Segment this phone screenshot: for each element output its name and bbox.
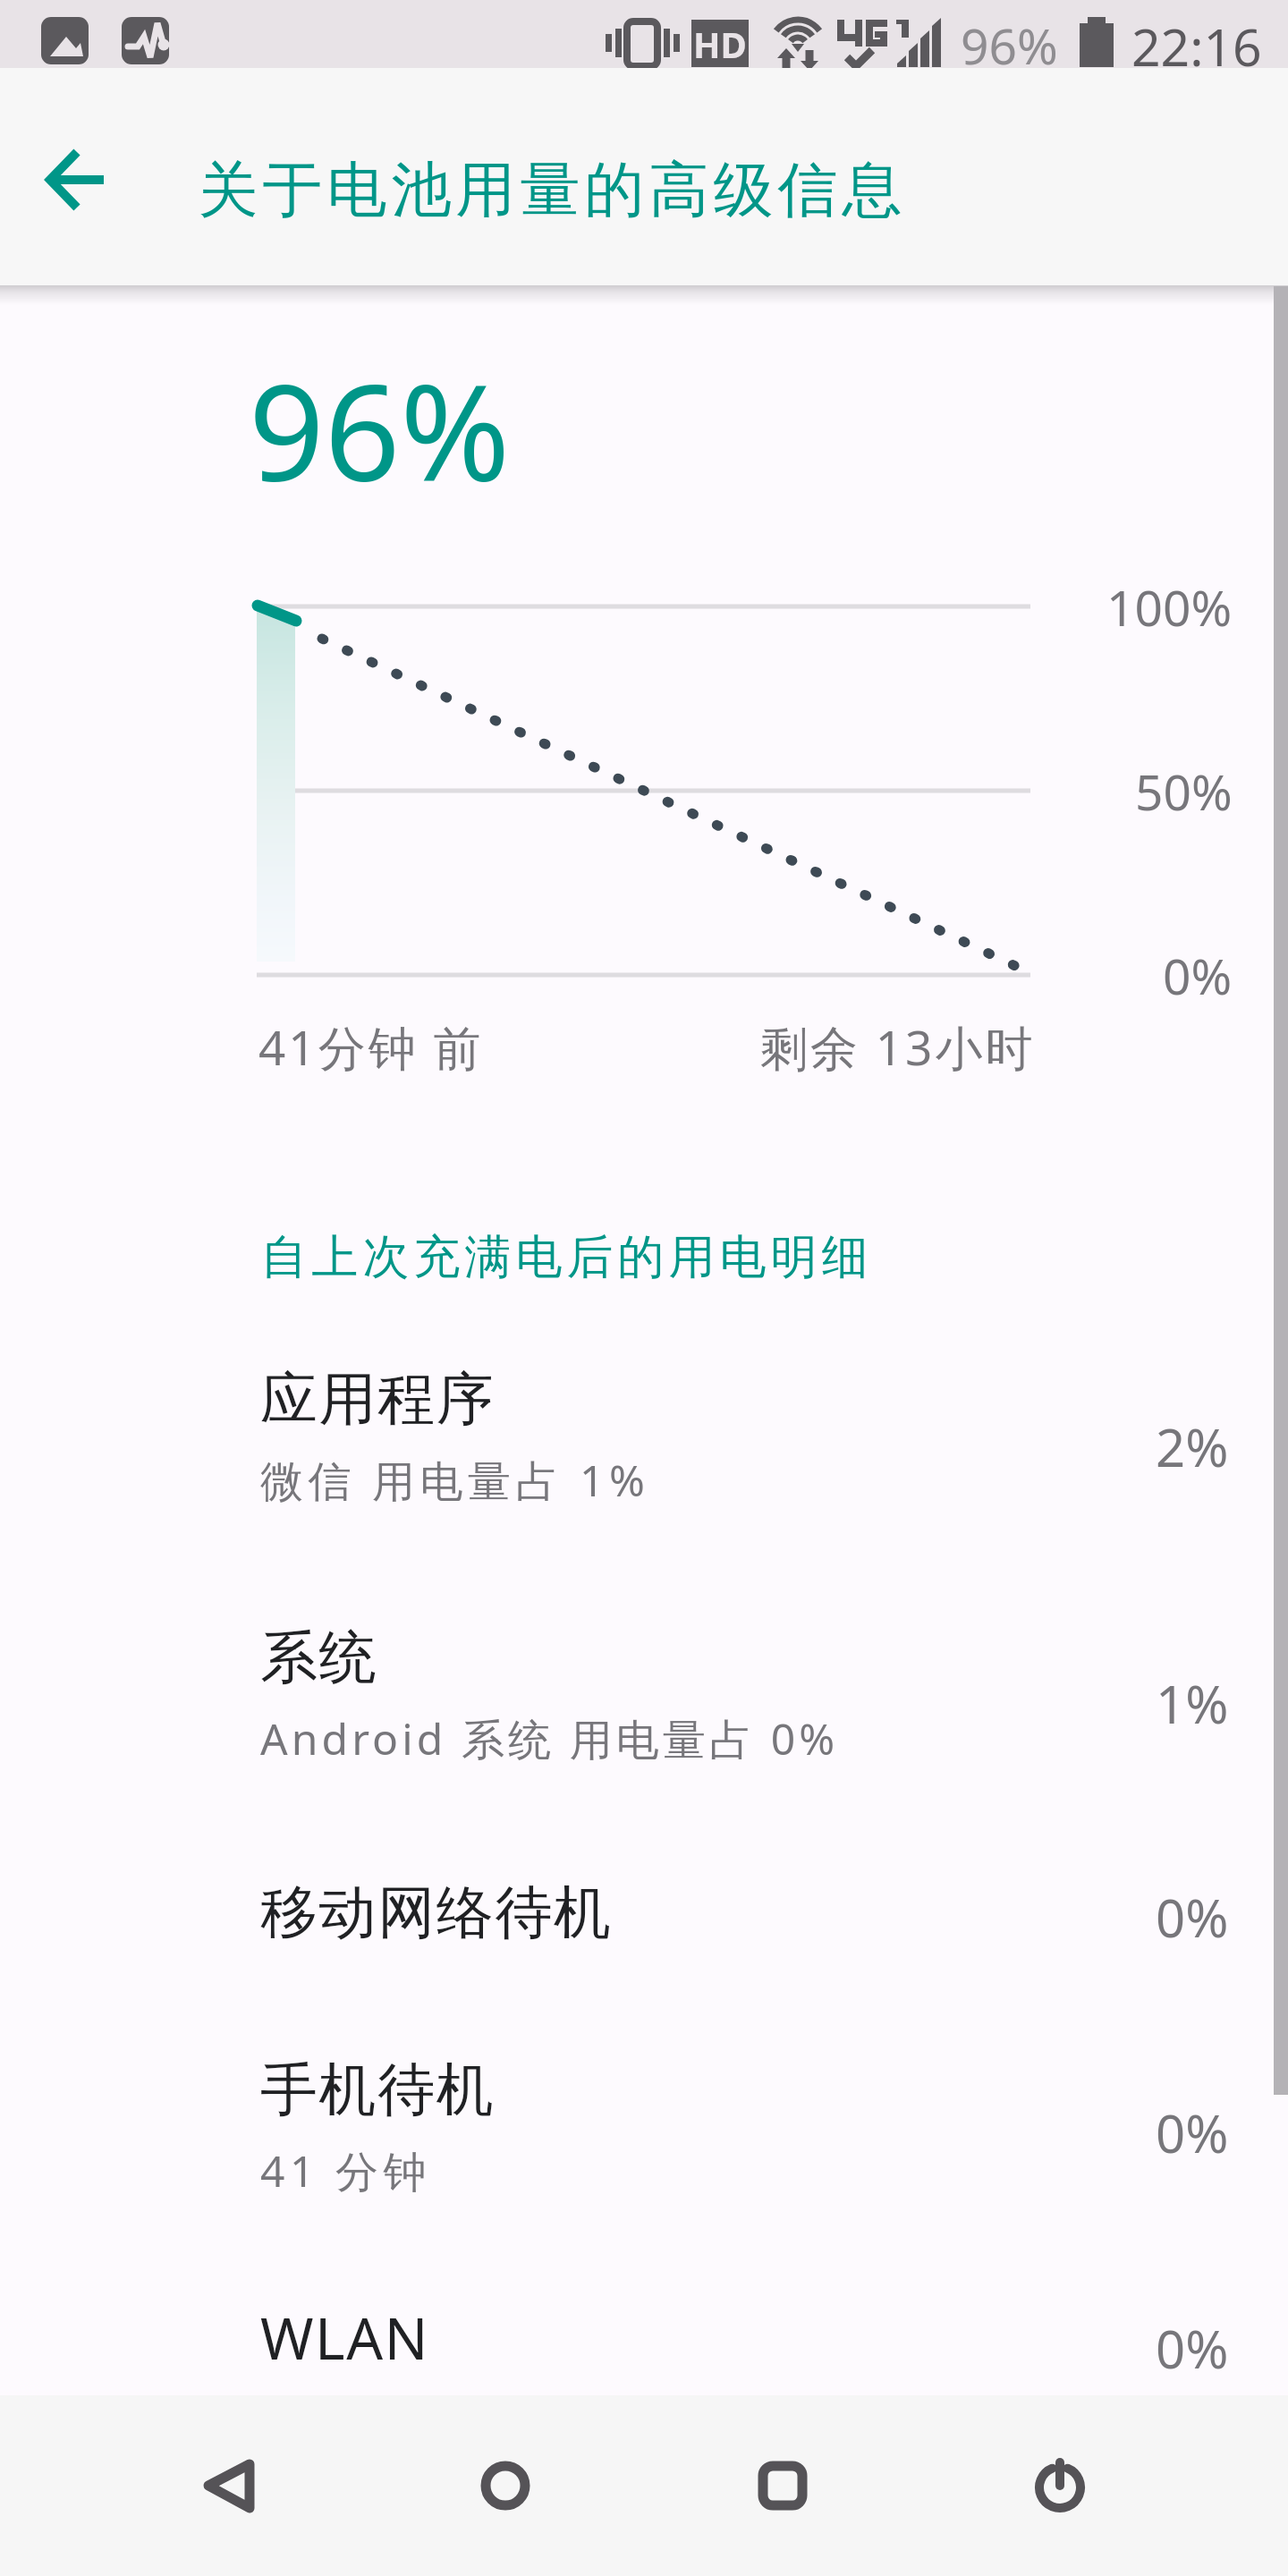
staticText: 自上次充满电后的用电明细: [258, 1228, 870, 1287]
staticText: 关于电池用量的高级信息: [196, 152, 904, 227]
staticText: 0%: [1163, 942, 1233, 1009]
staticText: 41 分钟: [260, 2141, 431, 2200]
staticText: HD: [693, 20, 747, 67]
button[interactable]: 系统: [0, 1614, 1288, 1872]
staticText: 0%: [1156, 2097, 1229, 2164]
staticText: WLAN: [260, 2299, 429, 2377]
staticText: 移动网络待机: [260, 1877, 613, 1949]
staticText: 1%: [1156, 1668, 1229, 1734]
button[interactable]: WLAN: [0, 2292, 1288, 2468]
staticText: 0%: [1156, 2313, 1229, 2379]
staticText: 2%: [1156, 1411, 1229, 1478]
staticText: 0%: [1156, 1882, 1229, 1948]
staticText: Android 系统 用电量占 0%: [260, 1709, 839, 1768]
staticText: 22:16: [1131, 12, 1262, 80]
button[interactable]: 手机待机: [0, 2046, 1288, 2304]
staticText: 应用程序: [260, 1363, 496, 1436]
staticText: 剩余 13小时: [760, 1014, 1036, 1079]
button[interactable]: Home: [465, 2450, 537, 2521]
staticText: 100%: [1106, 573, 1233, 640]
button[interactable]: Back: [191, 2450, 262, 2521]
staticText: 系统: [260, 1622, 378, 1694]
button[interactable]: Recents: [742, 2450, 814, 2521]
button[interactable]: 移动网络待机: [0, 1869, 1288, 2046]
staticText: 50%: [1135, 758, 1233, 825]
button[interactable]: Power: [1020, 2450, 1091, 2521]
staticText: 96%: [961, 12, 1058, 79]
button[interactable]: Back: [26, 128, 130, 232]
staticText: 41分钟 前: [258, 1014, 484, 1079]
staticText: 微信 用电量占 1%: [260, 1451, 650, 1510]
button[interactable]: 应用程序: [0, 1356, 1288, 1614]
staticText: 手机待机: [260, 2054, 496, 2126]
staticText: 96%: [249, 340, 511, 521]
